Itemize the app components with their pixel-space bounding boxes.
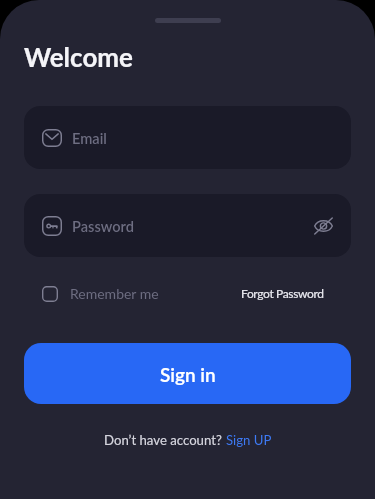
button[interactable]: Sign in [24, 343, 351, 404]
staticText: Remember me [70, 285, 159, 302]
button[interactable]: Show password [310, 213, 336, 239]
staticText: Sign in [160, 363, 216, 386]
staticText: Password [72, 218, 134, 236]
staticText: Don’t have account? [104, 432, 226, 448]
button[interactable]: Email [24, 106, 351, 169]
button[interactable]: Password [24, 194, 351, 257]
button[interactable]: Sign UP [226, 432, 272, 448]
button[interactable]: Forgot Password [241, 286, 324, 300]
button[interactable]: Remember me [42, 285, 159, 302]
staticText: Welcome [24, 41, 133, 72]
staticText: Email [72, 130, 107, 148]
